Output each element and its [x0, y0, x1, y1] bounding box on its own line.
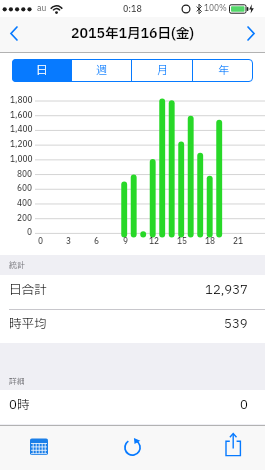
staticText: 200 — [17, 213, 33, 225]
button[interactable] — [2, 20, 28, 50]
staticText: 12,937 — [205, 281, 248, 300]
staticText: 1,000 — [10, 154, 33, 166]
button[interactable] — [110, 426, 154, 470]
staticText: 1,200 — [10, 139, 33, 151]
staticText: 3 — [66, 236, 72, 248]
staticText: 詳細 — [9, 376, 25, 388]
staticText: 800 — [17, 169, 33, 181]
staticText: au — [37, 3, 47, 15]
staticText: 12 — [149, 236, 160, 248]
staticText: 100% — [204, 3, 227, 15]
staticText: 月 — [157, 62, 168, 79]
staticText: 15 — [177, 236, 188, 248]
button[interactable]: 時平均 — [0, 309, 265, 343]
staticText: 日 — [36, 62, 47, 79]
staticText: 6 — [94, 236, 100, 248]
button[interactable] — [17, 426, 61, 470]
staticText: 9 — [123, 236, 129, 248]
staticText: 1,400 — [10, 124, 33, 136]
button[interactable]: 日合計 — [0, 275, 265, 309]
staticText: 2015年1月16日(金) — [71, 24, 195, 44]
staticText: 0:18 — [123, 3, 142, 16]
staticText: 時平均 — [9, 315, 47, 334]
button[interactable] — [237, 20, 263, 50]
button[interactable]: 週 — [72, 59, 131, 82]
staticText: 年 — [218, 62, 229, 79]
staticText: 週 — [96, 62, 107, 79]
staticText: 1,800 — [10, 95, 33, 107]
button[interactable]: 0時 — [0, 390, 265, 424]
staticText: 統計 — [9, 260, 25, 272]
staticText: 0時 — [9, 396, 30, 415]
staticText: 0 — [240, 396, 248, 415]
button[interactable] — [211, 426, 255, 470]
staticText: 0 — [27, 227, 33, 239]
staticText: 0 — [38, 236, 44, 248]
staticText: 21 — [233, 236, 244, 248]
staticText: 日合計 — [9, 281, 47, 300]
button[interactable]: 日 — [12, 59, 71, 82]
staticText: 600 — [17, 183, 33, 195]
staticText: 1,600 — [10, 110, 33, 122]
staticText: 18 — [205, 236, 216, 248]
button[interactable]: 月 — [132, 59, 192, 82]
staticText: 400 — [17, 198, 33, 210]
staticText: 539 — [224, 315, 248, 334]
button[interactable]: 年 — [193, 59, 253, 82]
